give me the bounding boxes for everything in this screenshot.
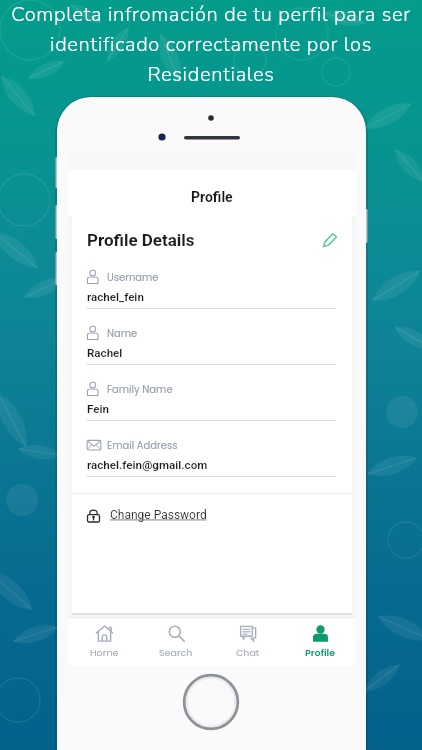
button[interactable]: Search [140, 618, 212, 666]
staticText: Rachel [87, 346, 123, 360]
staticText: Change Password [110, 508, 207, 522]
staticText: Profile [305, 646, 336, 659]
staticText: Profile Details [87, 230, 195, 250]
staticText: Search [159, 646, 193, 659]
staticText: Chat [236, 646, 260, 659]
button[interactable]: Home [68, 618, 140, 666]
staticText: rachel.fein@gmail.com [87, 458, 208, 472]
staticText: Username [107, 270, 159, 284]
staticText: Home [90, 646, 119, 659]
staticText: Family Name [107, 382, 173, 396]
staticText: Fein [87, 402, 109, 416]
button[interactable]: Edit profile [322, 232, 338, 248]
staticText: rachel_fein [87, 290, 144, 304]
button[interactable]: Change Password [87, 506, 338, 524]
staticText: Completa infromación de tu perfil para s… [11, 1, 411, 88]
staticText: Email Address [107, 438, 178, 452]
staticText: Profile [191, 189, 233, 205]
staticText: Name [107, 326, 138, 340]
button[interactable]: Chat [212, 618, 284, 666]
button[interactable]: Profile [284, 618, 356, 666]
